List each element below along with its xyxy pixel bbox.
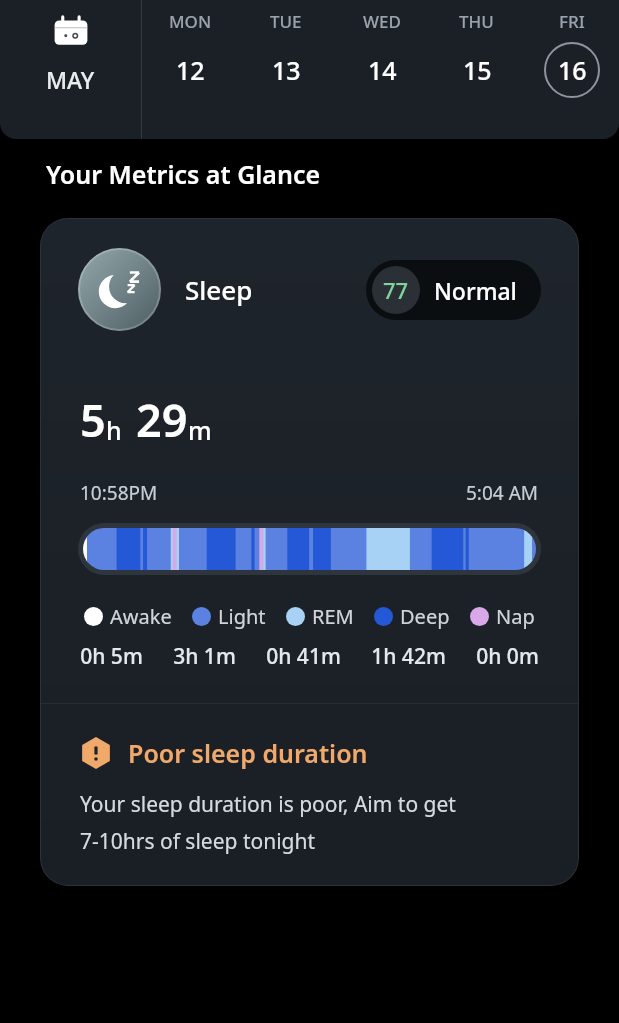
button[interactable]: MON — [142, 0, 238, 139]
staticText: 3h 1m — [173, 642, 236, 671]
staticText: 0h 41m — [266, 642, 341, 671]
button[interactable]: 77 — [366, 260, 541, 320]
button[interactable]: Sleep — [40, 218, 579, 886]
button[interactable]: FRI — [524, 0, 619, 139]
staticText: Nap — [496, 603, 535, 630]
staticText: m — [188, 413, 212, 447]
staticText: Light — [218, 603, 266, 630]
staticText: 16 — [558, 53, 587, 87]
button[interactable]: Month May — [0, 0, 141, 139]
staticText: MON — [169, 10, 212, 33]
button[interactable]: WED — [334, 0, 429, 139]
staticText: Deep — [400, 603, 450, 630]
staticText: Your Metrics at Glance — [46, 157, 321, 191]
staticText: 1h 42m — [371, 642, 446, 671]
staticText: WED — [363, 10, 401, 33]
staticText: h — [106, 413, 122, 447]
button[interactable]: THU — [429, 0, 524, 139]
staticText: 14 — [368, 53, 397, 87]
staticText: MAY — [46, 64, 95, 95]
staticText: 5:04 AM — [466, 480, 539, 506]
staticText: TUE — [270, 10, 302, 33]
button[interactable]: TUE — [238, 0, 334, 139]
staticText: 7-10hrs of sleep tonight — [80, 827, 316, 856]
staticText: 29 — [136, 389, 188, 450]
staticText: THU — [459, 10, 494, 33]
staticText: 13 — [272, 53, 301, 87]
staticText: Your sleep duration is poor, Aim to get — [80, 790, 456, 819]
staticText: Awake — [110, 603, 172, 630]
staticText: 10:58PM — [80, 480, 158, 506]
staticText: FRI — [559, 10, 585, 33]
staticText: 0h 0m — [476, 642, 539, 671]
staticText: 77 — [383, 275, 409, 305]
staticText: Poor sleep duration — [128, 736, 368, 770]
staticText: REM — [312, 603, 354, 630]
button[interactable] — [83, 528, 536, 570]
staticText: Sleep — [185, 272, 253, 307]
staticText: 12 — [176, 53, 205, 87]
staticText: Normal — [434, 275, 517, 306]
staticText: 0h 5m — [80, 642, 143, 671]
staticText: 5 — [80, 389, 106, 450]
staticText: 15 — [463, 53, 492, 87]
